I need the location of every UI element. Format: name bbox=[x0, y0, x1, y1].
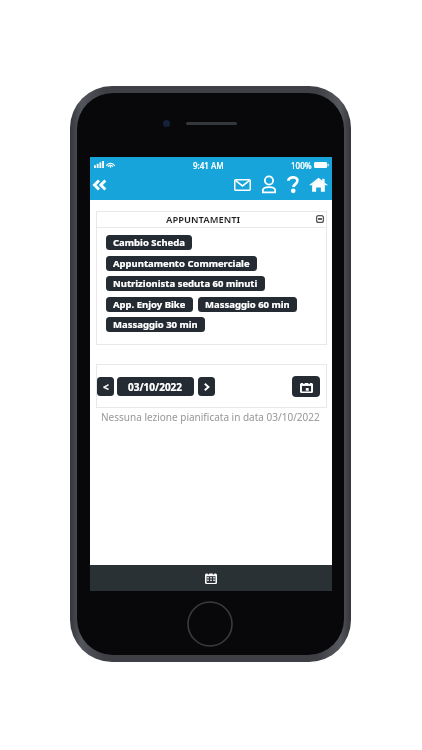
button[interactable]: Cambio Scheda bbox=[106, 235, 192, 250]
staticText: Massaggio 60 min bbox=[205, 298, 290, 311]
staticText: Appuntamento Commerciale bbox=[113, 257, 250, 270]
button[interactable]: Next day bbox=[198, 377, 215, 396]
staticText: Nessuna lezione pianificata in data 03/1… bbox=[101, 410, 320, 424]
staticText: APPUNTAMENTI bbox=[166, 213, 241, 226]
staticText: 9:41 AM bbox=[193, 160, 224, 171]
staticText: Massaggio 30 min bbox=[113, 318, 198, 331]
button[interactable]: Massaggio 30 min bbox=[106, 317, 205, 332]
staticText: 03/10/2022 bbox=[128, 380, 183, 394]
button[interactable]: Messages bbox=[231, 172, 254, 200]
button[interactable]: Back bbox=[90, 172, 111, 200]
staticText: Nutrizionista seduta 60 minuti bbox=[113, 277, 258, 290]
staticText: 100% bbox=[291, 160, 312, 171]
button[interactable]: Appuntamento Commerciale bbox=[106, 256, 257, 271]
button[interactable]: Nutrizionista seduta 60 minuti bbox=[106, 276, 265, 291]
button[interactable]: Calendar bbox=[199, 566, 223, 590]
button[interactable]: App. Enjoy Bike bbox=[106, 297, 193, 312]
button[interactable]: Pick date bbox=[292, 376, 320, 397]
button[interactable]: Previous day bbox=[97, 377, 114, 396]
button[interactable]: Help bbox=[284, 172, 303, 200]
button[interactable]: Profile bbox=[259, 172, 279, 200]
button[interactable]: Home bbox=[306, 172, 331, 200]
staticText: App. Enjoy Bike bbox=[113, 298, 186, 311]
button[interactable]: Massaggio 60 min bbox=[198, 297, 297, 312]
button[interactable]: 03/10/2022 bbox=[117, 377, 194, 396]
staticText: < bbox=[103, 380, 109, 394]
staticText: Cambio Scheda bbox=[113, 236, 185, 249]
button[interactable]: Calendar view bbox=[313, 211, 327, 227]
